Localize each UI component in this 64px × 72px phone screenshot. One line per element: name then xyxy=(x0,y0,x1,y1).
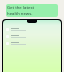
button[interactable] xyxy=(3,26,61,33)
button[interactable] xyxy=(3,33,61,40)
button[interactable] xyxy=(3,40,61,47)
staticText: health news. xyxy=(7,11,33,17)
staticText: Get the latest xyxy=(7,5,35,11)
